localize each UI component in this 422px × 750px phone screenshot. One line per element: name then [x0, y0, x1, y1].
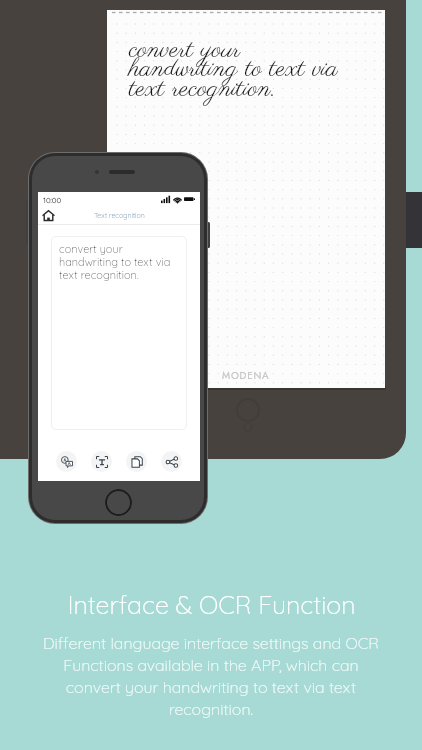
- button[interactable]: Home: [42, 209, 55, 222]
- button[interactable]: Translate: [56, 451, 77, 472]
- staticText: convert your handwriting to text via tex…: [129, 32, 338, 107]
- staticText: Interface & OCR Function: [67, 589, 356, 620]
- staticText: Different language interface settings an…: [43, 633, 379, 719]
- button[interactable]: Text recognition: [91, 451, 112, 472]
- staticText: MODENA: [222, 368, 270, 382]
- staticText: Text recognition: [94, 211, 145, 220]
- staticText: 10:00: [43, 195, 62, 205]
- button[interactable]: Share: [161, 451, 182, 472]
- button[interactable]: Copy: [126, 451, 147, 472]
- staticText: convert your handwriting to text via tex…: [59, 242, 171, 282]
